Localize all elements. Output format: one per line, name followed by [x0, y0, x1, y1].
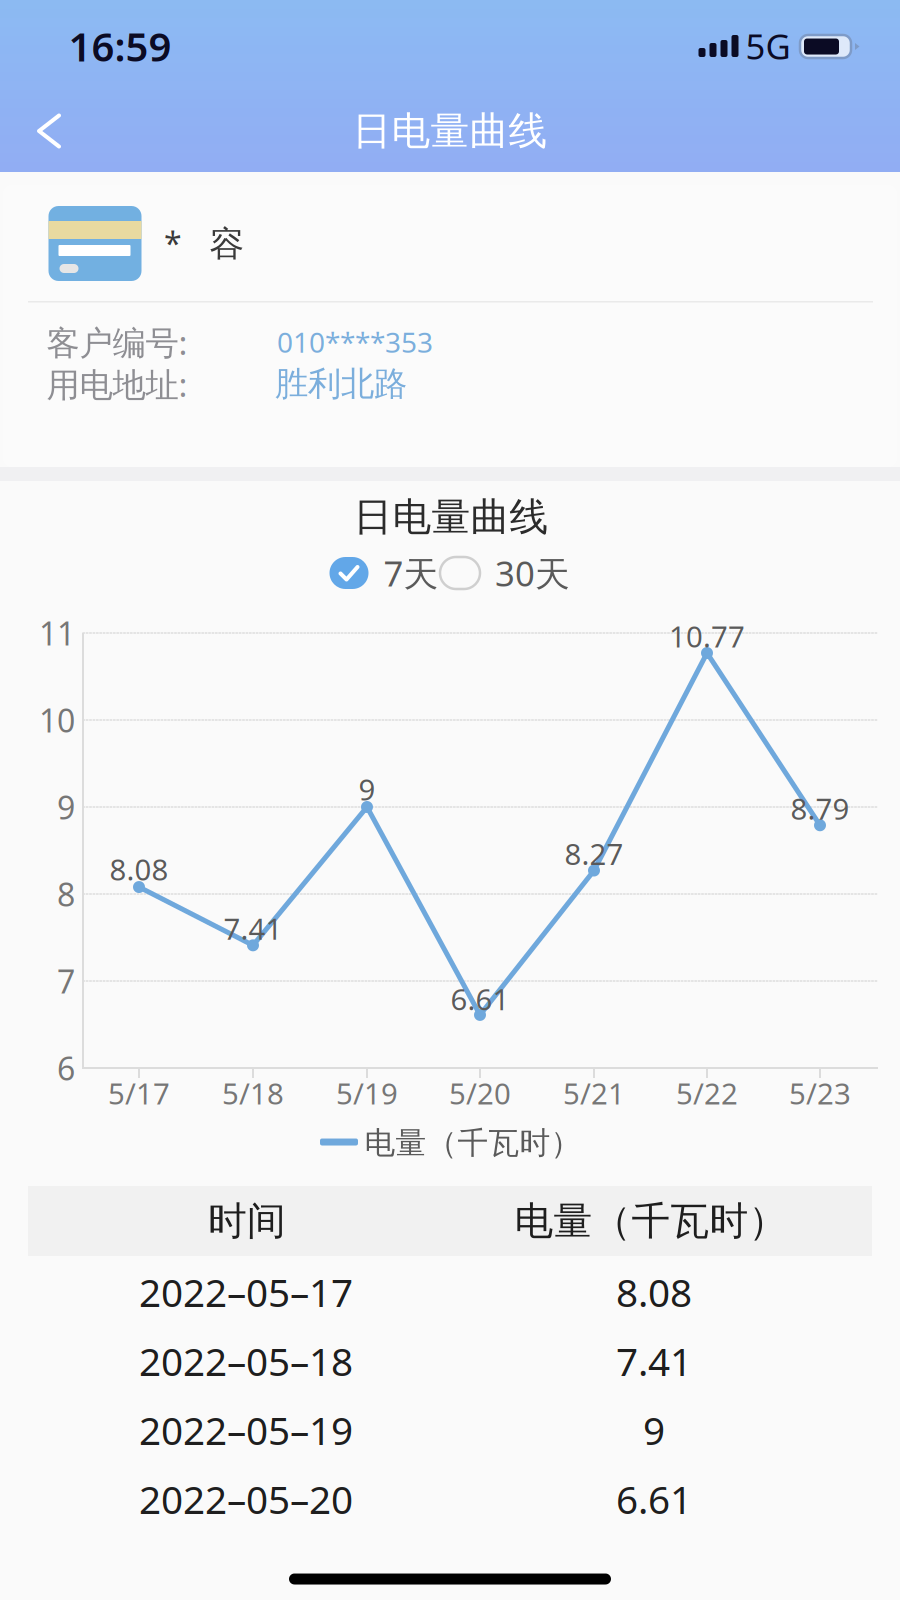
staticText: 6.61 — [616, 1473, 692, 1525]
staticText: 用电地址: — [46, 362, 187, 406]
staticText: 7.41 — [616, 1335, 692, 1387]
staticText: 2022–05–18 — [139, 1335, 353, 1387]
staticText: 容 — [209, 223, 244, 265]
staticText: 7天 — [383, 550, 438, 596]
staticText: 16:59 — [68, 19, 171, 72]
staticText: 5/19 — [336, 1073, 398, 1112]
staticText: 6.61 — [450, 979, 509, 1018]
staticText: 电量（千瓦时） — [364, 1124, 581, 1162]
staticText: 5G — [745, 23, 790, 69]
staticText: 8.08 — [616, 1266, 692, 1318]
staticText: 5/21 — [563, 1073, 625, 1112]
button[interactable]: 30天 — [440, 542, 570, 604]
staticText: 11 — [39, 612, 75, 654]
staticText: 日电量曲线 — [353, 493, 548, 541]
staticText: 2022–05–20 — [139, 1473, 353, 1525]
staticText: 客户编号: — [46, 320, 187, 364]
staticText: 时间 — [208, 1197, 286, 1245]
staticText: 10 — [39, 699, 75, 741]
staticText: 30天 — [495, 550, 570, 596]
button[interactable]: 7天 — [329, 542, 438, 604]
staticText: 6 — [57, 1047, 75, 1089]
staticText: 010****353 — [277, 323, 433, 361]
staticText: 5/23 — [789, 1073, 851, 1112]
staticText: 8 — [57, 873, 75, 915]
staticText: 2022–05–17 — [139, 1266, 353, 1318]
staticText: 8.27 — [564, 834, 623, 873]
button[interactable]: Back — [0, 92, 86, 169]
staticText: 9 — [57, 786, 75, 828]
staticText: 电量（千瓦时） — [514, 1197, 787, 1245]
staticText: 10.77 — [669, 616, 745, 655]
staticText: 8.79 — [790, 789, 849, 828]
staticText: 7.41 — [223, 909, 282, 948]
staticText: 5/20 — [449, 1073, 511, 1112]
staticText: 胜利北路 — [275, 363, 407, 404]
staticText: 5/17 — [108, 1073, 170, 1112]
staticText: 9 — [643, 1404, 665, 1456]
staticText: 9 — [358, 769, 375, 808]
staticText: 5/18 — [222, 1073, 284, 1112]
staticText: 7 — [57, 960, 75, 1002]
staticText: 日电量曲线 — [352, 107, 547, 155]
staticText: * — [164, 222, 182, 264]
staticText: 5/22 — [676, 1073, 738, 1112]
staticText: 8.08 — [109, 850, 168, 889]
staticText: 2022–05–19 — [139, 1404, 353, 1456]
